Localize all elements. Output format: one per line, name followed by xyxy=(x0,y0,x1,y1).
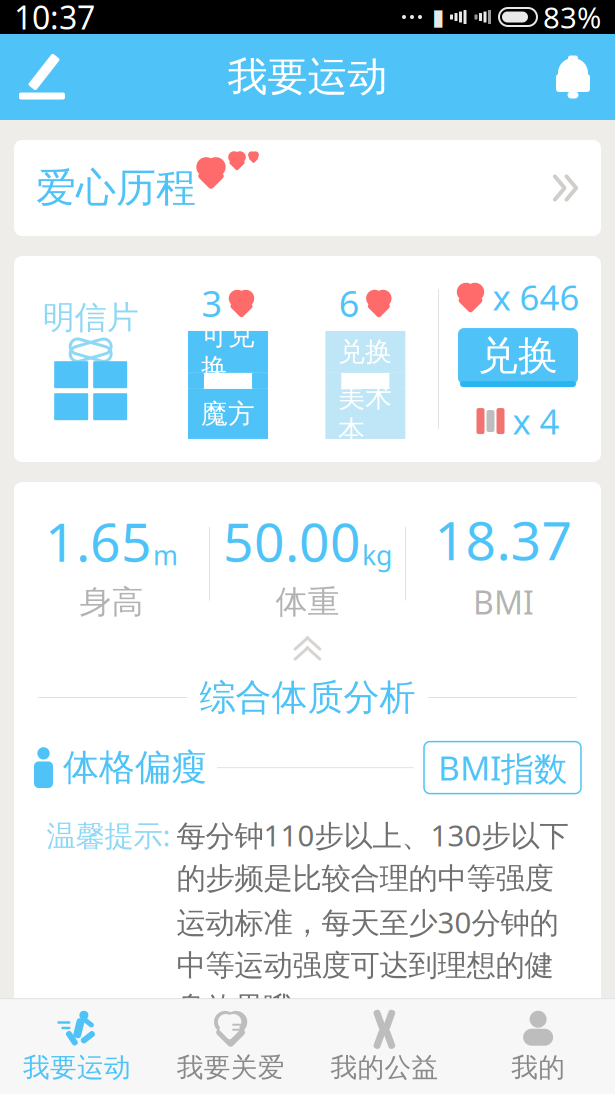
staticText: 身高 xyxy=(79,582,143,622)
staticText: 1.65 xyxy=(45,506,152,576)
staticText: 爱心历程 xyxy=(36,163,196,212)
button[interactable]: 我要关爱 xyxy=(154,1003,308,1088)
staticText: 我要运动 xyxy=(227,52,387,101)
staticText: 我要关爱 xyxy=(177,1051,285,1084)
staticText: 兑换 xyxy=(338,336,392,368)
staticText: 体格偏瘦 xyxy=(63,745,207,790)
button[interactable]: 我要运动 xyxy=(0,1003,154,1088)
staticText: 美术本 xyxy=(338,381,392,447)
staticText: 温馨提示: xyxy=(46,816,170,855)
button[interactable]: 6 xyxy=(325,279,405,439)
staticText: 综合体质分析 xyxy=(199,675,415,720)
staticText: x 646 xyxy=(492,274,579,320)
staticText: 魔方 xyxy=(201,398,255,430)
staticText: 18.37 xyxy=(434,504,572,575)
staticText: 我要运动 xyxy=(23,1051,131,1084)
staticText: 体重 xyxy=(275,582,339,622)
staticText: 3 xyxy=(201,279,222,327)
button[interactable]: 我的公益 xyxy=(307,1003,461,1088)
staticText: 明信片 xyxy=(43,298,139,337)
staticText: 我的公益 xyxy=(330,1051,438,1084)
staticText: 50.00 xyxy=(223,506,361,576)
staticText: kg xyxy=(362,537,392,572)
staticText: 6 xyxy=(339,279,360,327)
button[interactable]: BMI指数 xyxy=(424,742,581,794)
staticText: 兑换 xyxy=(478,331,558,381)
button[interactable]: 通知 xyxy=(545,49,601,105)
button[interactable]: 展开 xyxy=(277,631,337,665)
staticText: BMI xyxy=(473,581,534,623)
staticText: x 4 xyxy=(512,398,559,444)
staticText: 我的 xyxy=(511,1051,565,1084)
button[interactable]: 3 xyxy=(188,279,268,439)
button[interactable]: 爱心历程 xyxy=(14,140,601,236)
button[interactable]: 我的 xyxy=(461,1003,615,1088)
staticText: 每分钟110步以上、130步以下的步频是比较合理的中等强度运动标准，每天至少30… xyxy=(176,816,568,1026)
staticText: ▮ xyxy=(432,4,444,30)
button[interactable]: 兑换 xyxy=(458,328,578,390)
staticText: m xyxy=(153,537,178,572)
staticText: BMI指数 xyxy=(438,745,567,790)
staticText: 83% xyxy=(543,0,601,36)
staticText: 10:37 xyxy=(14,0,95,38)
button[interactable]: 编辑 xyxy=(14,49,70,105)
staticText: 可兑换 xyxy=(201,319,255,385)
